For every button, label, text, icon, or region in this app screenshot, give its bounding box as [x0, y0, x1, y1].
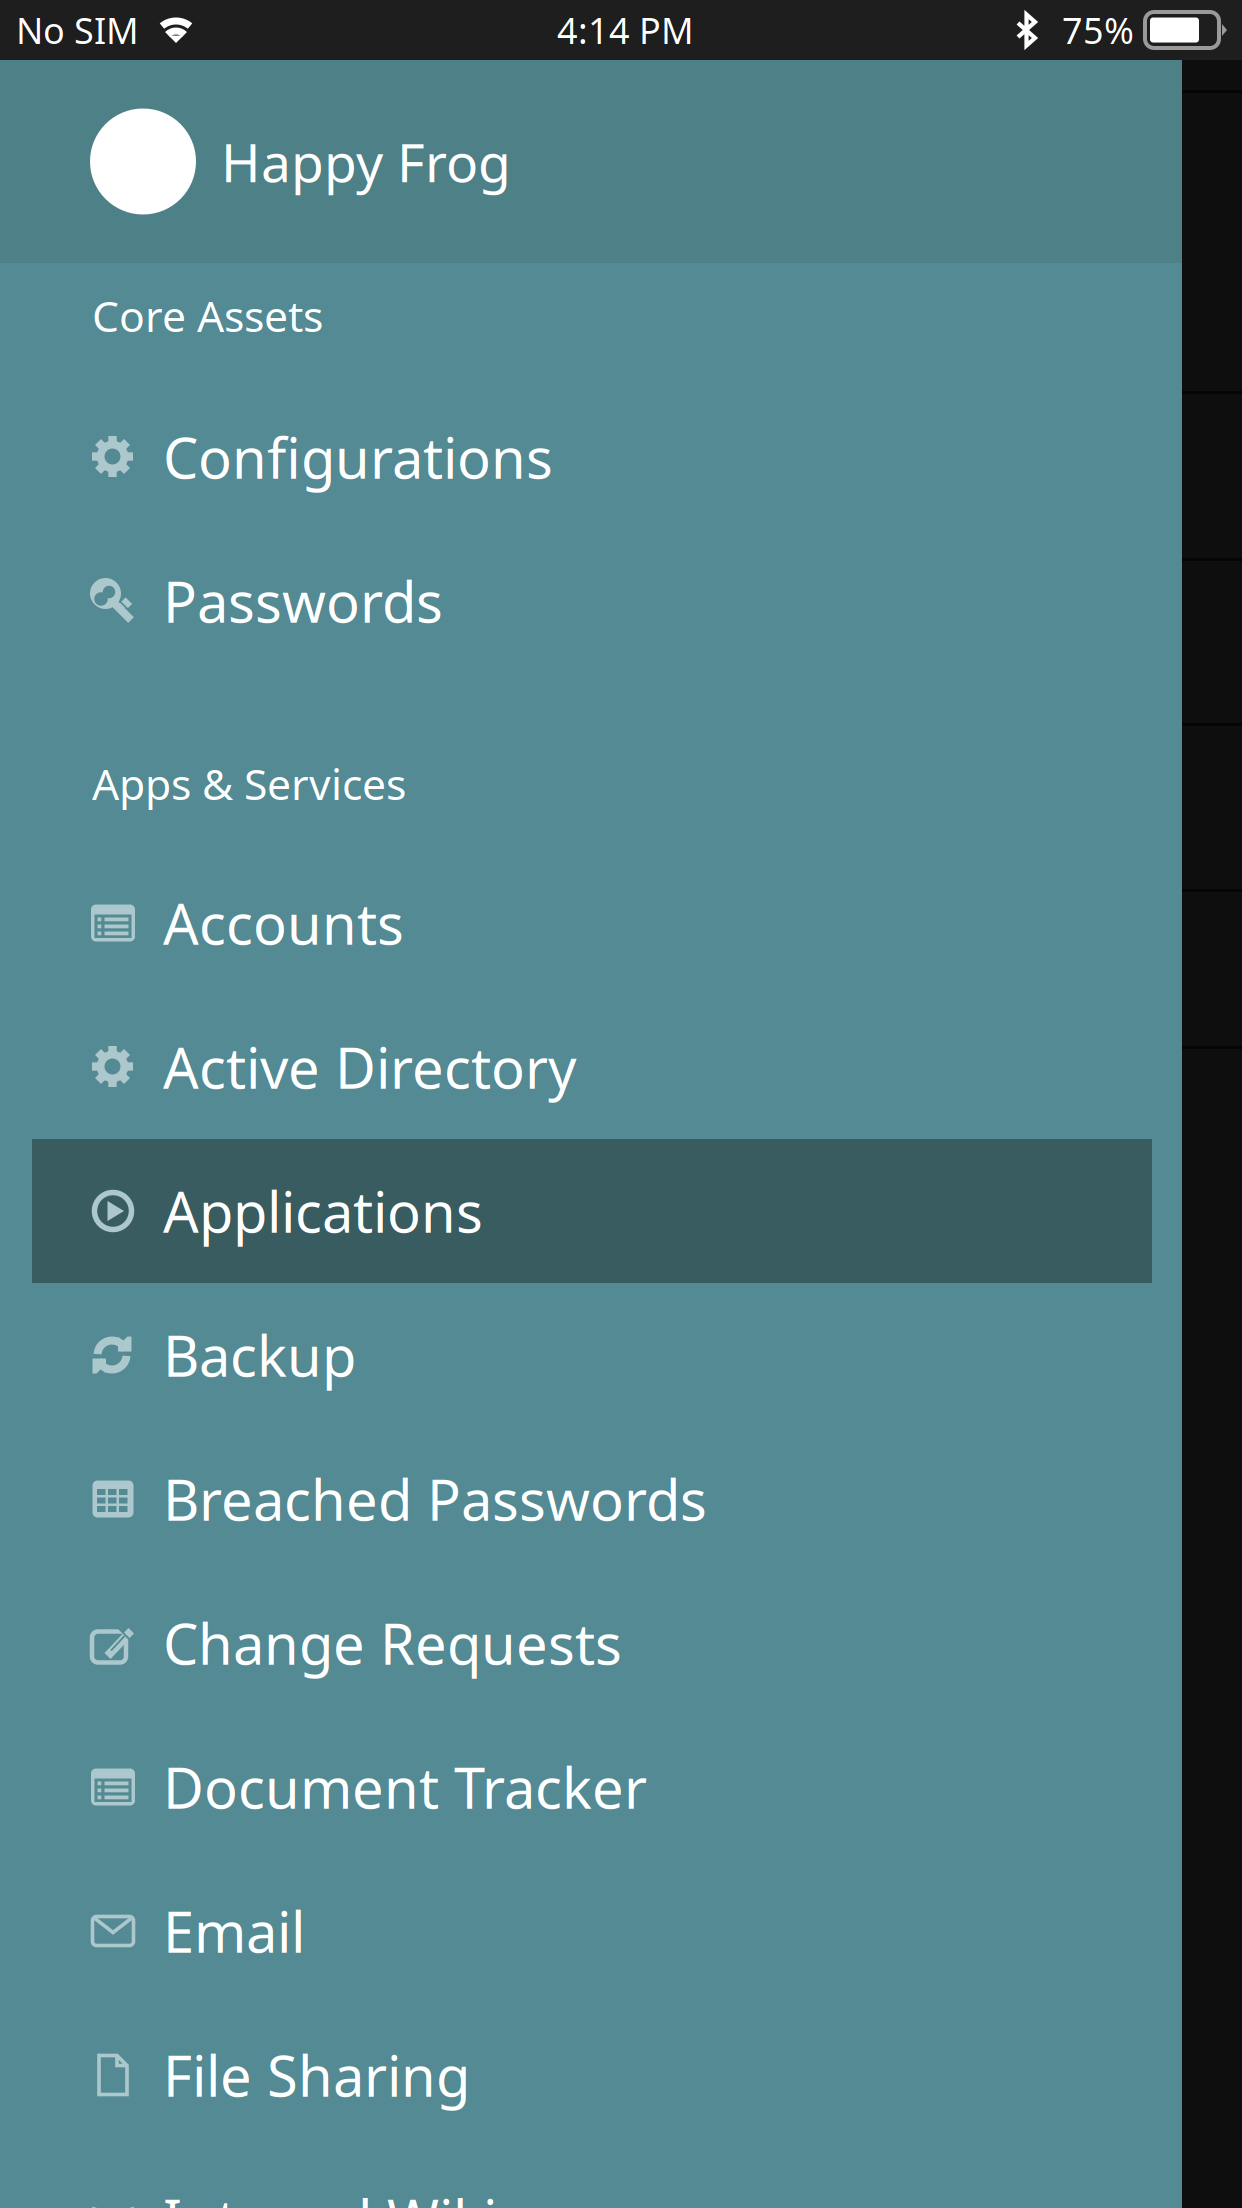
staticText: Passwords — [163, 564, 443, 638]
staticText: No SIM — [16, 6, 139, 54]
button[interactable]: Email — [0, 1859, 1182, 2003]
staticText: Active Directory — [163, 1030, 577, 1104]
staticText: Change Requests — [163, 1606, 622, 1680]
button[interactable]: Breached Passwords — [0, 1427, 1182, 1571]
staticText: File Sharing — [163, 2038, 470, 2112]
staticText: Apps & Services — [92, 755, 406, 812]
staticText: Internal Wiki — [163, 2182, 497, 2208]
button[interactable]: Internal Wiki — [0, 2147, 1182, 2208]
button[interactable]: Document Tracker — [0, 1715, 1182, 1859]
staticText: Happy Frog — [221, 126, 511, 197]
button[interactable]: Applications — [0, 1139, 1182, 1283]
button[interactable]: Happy Frog — [0, 60, 1182, 263]
staticText: 4:14 PM — [557, 6, 694, 54]
staticText: Configurations — [163, 420, 553, 494]
staticText: Backup — [163, 1318, 356, 1392]
staticText: Email — [163, 1894, 305, 1968]
staticText: Core Assets — [92, 287, 323, 344]
staticText: Accounts — [163, 886, 404, 960]
button[interactable]: File Sharing — [0, 2003, 1182, 2147]
staticText: Breached Passwords — [163, 1462, 707, 1536]
button[interactable]: Change Requests — [0, 1571, 1182, 1715]
button[interactable]: Backup — [0, 1283, 1182, 1427]
button[interactable]: Passwords — [0, 529, 1182, 673]
staticText: Document Tracker — [163, 1750, 647, 1824]
button[interactable]: Active Directory — [0, 995, 1182, 1139]
button[interactable]: Accounts — [0, 851, 1182, 995]
staticText: 75% — [1062, 6, 1134, 54]
staticText: Applications — [163, 1174, 483, 1248]
button[interactable]: Configurations — [0, 385, 1182, 529]
